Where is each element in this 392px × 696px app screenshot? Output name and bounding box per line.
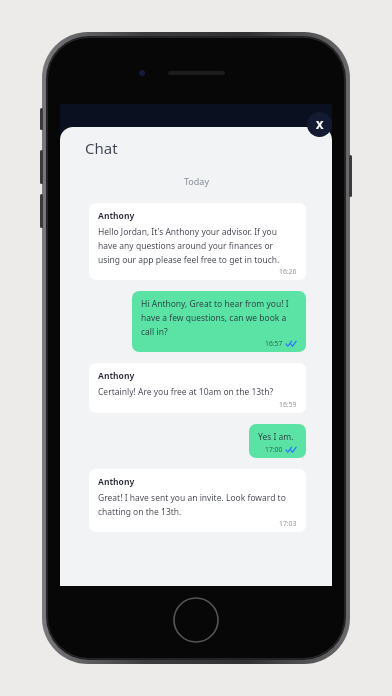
staticText: X: [316, 117, 324, 132]
button[interactable]: Anthony: [89, 469, 306, 532]
button[interactable]: Anthony: [89, 363, 306, 413]
staticText: 16:26: [279, 267, 297, 276]
staticText: 17:03: [279, 519, 297, 528]
staticText: 16:59: [279, 400, 297, 409]
staticText: Anthony: [98, 210, 135, 222]
staticText: Today: [184, 175, 209, 187]
staticText: Hi Anthony, Great to hear from you! I ha…: [141, 298, 297, 337]
button[interactable]: Anthony: [89, 203, 306, 280]
staticText: Chat: [85, 138, 118, 158]
button[interactable]: Hi Anthony, Great to hear from you! I ha…: [132, 291, 306, 352]
staticText: Certainly! Are you free at 10am on the 1…: [98, 386, 274, 398]
staticText: 16:57: [265, 339, 283, 348]
staticText: Anthony: [98, 370, 135, 382]
staticText: Great! I have sent you an invite. Look f…: [98, 492, 297, 517]
button[interactable]: Yes I am.: [249, 424, 306, 458]
staticText: Anthony: [98, 476, 135, 488]
staticText: 17:00: [265, 445, 283, 454]
staticText: Yes I am.: [258, 431, 294, 443]
staticText: Hello Jordan, It's Anthony your advisor.…: [98, 226, 297, 265]
button[interactable]: Close: [307, 112, 332, 137]
